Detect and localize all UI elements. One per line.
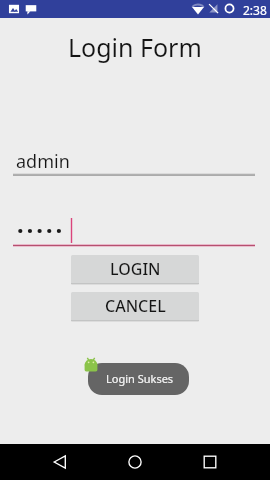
staticText: admin — [16, 149, 70, 174]
button[interactable]: Home — [105, 444, 165, 480]
staticText: CANCEL — [105, 295, 166, 317]
staticText: Login Form — [68, 30, 202, 64]
button[interactable]: Back — [30, 444, 90, 480]
button[interactable]: LOGIN — [71, 255, 199, 285]
button[interactable]: CANCEL — [71, 292, 199, 322]
staticText: 2:38 — [243, 2, 267, 18]
staticText: Login Sukses — [106, 371, 174, 386]
staticText: LOGIN — [110, 258, 161, 280]
button[interactable]: Recent apps — [180, 444, 240, 480]
